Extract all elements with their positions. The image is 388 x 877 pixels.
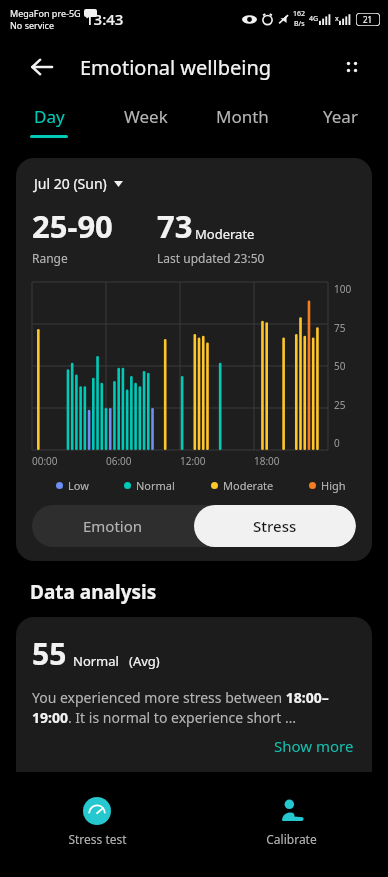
- staticText: Day: [34, 105, 65, 128]
- button[interactable]: Emotion: [32, 505, 194, 547]
- staticText: 12:00: [180, 454, 206, 468]
- staticText: x: [335, 14, 339, 24]
- staticText: Moderate: [195, 225, 255, 243]
- button[interactable]: Year: [291, 96, 388, 146]
- staticText: 06:00: [106, 454, 132, 468]
- staticText: 00:00: [32, 454, 58, 468]
- button[interactable]: Month: [194, 96, 291, 146]
- staticText: Range: [32, 250, 68, 266]
- staticText: Calibrate: [266, 831, 317, 847]
- staticText: 75: [334, 321, 346, 335]
- staticText: 0: [334, 436, 340, 450]
- staticText: Emotional wellbeing: [80, 54, 272, 81]
- staticText: 73: [157, 205, 193, 247]
- staticText: 18:00: [254, 454, 280, 468]
- staticText: Year: [323, 105, 358, 128]
- button[interactable]: Day: [0, 96, 97, 146]
- staticText: Week: [124, 105, 168, 128]
- staticText: 25: [334, 398, 346, 412]
- button[interactable]: Calibrate: [194, 789, 388, 877]
- button[interactable]: Show more: [272, 734, 356, 758]
- staticText: MegaFon pre-5G: [10, 7, 81, 19]
- staticText: High: [321, 478, 346, 493]
- button[interactable]: More options: [334, 49, 370, 85]
- staticText: Emotion: [83, 516, 143, 536]
- staticText: 13:43: [85, 9, 124, 29]
- button[interactable]: Jul 20 (Sun): [16, 158, 372, 561]
- staticText: B/s: [294, 19, 305, 29]
- button[interactable]: Week: [97, 96, 194, 146]
- staticText: You experienced more stress between 18:0…: [32, 688, 356, 728]
- staticText: Low: [68, 478, 89, 493]
- button[interactable]: Stress test: [0, 789, 194, 877]
- staticText: No service: [10, 19, 55, 31]
- staticText: Stress: [253, 516, 297, 536]
- staticText: Month: [216, 105, 269, 128]
- button[interactable]: Back: [24, 49, 60, 85]
- staticText: Moderate: [223, 478, 274, 493]
- staticText: Normal: [136, 478, 175, 493]
- staticText: 4G: [309, 14, 319, 24]
- staticText: 25-90: [32, 205, 113, 247]
- button[interactable]: 55: [16, 617, 372, 772]
- staticText: Normal (Avg): [73, 652, 160, 670]
- button[interactable]: Jul 20 (Sun): [32, 172, 125, 195]
- staticText: Jul 20 (Sun): [34, 174, 107, 193]
- staticText: Data analysis: [30, 579, 157, 605]
- staticText: 55: [32, 633, 67, 674]
- staticText: 21: [363, 14, 373, 25]
- staticText: Stress test: [68, 831, 127, 847]
- staticText: 50: [334, 359, 346, 373]
- button[interactable]: Stress: [194, 505, 356, 547]
- staticText: 100: [334, 282, 352, 296]
- staticText: 162: [293, 9, 306, 19]
- staticText: Last updated 23:50: [157, 250, 265, 266]
